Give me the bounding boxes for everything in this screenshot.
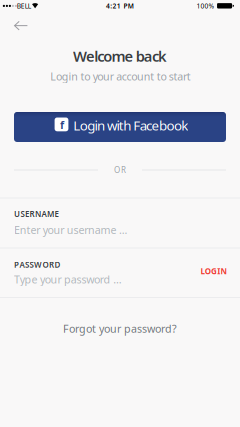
button[interactable]: f: [14, 112, 226, 142]
button[interactable]: LOGIN: [200, 266, 228, 276]
button[interactable]: Username: [0, 199, 240, 248]
staticText: 100%: [196, 1, 214, 10]
staticText: BELL: [17, 1, 31, 10]
button[interactable]: Password: [0, 249, 240, 297]
staticText: f: [60, 118, 64, 132]
button[interactable]: Forgot your password?: [63, 321, 177, 336]
button[interactable]: Back: [14, 21, 28, 31]
staticText: PASSWORD: [14, 259, 60, 270]
staticText: OR: [114, 165, 126, 175]
staticText: Login with Facebook: [73, 116, 188, 134]
staticText: Type your password ...: [14, 272, 122, 286]
staticText: LOGIN: [200, 266, 228, 276]
staticText: Login to your account to start: [50, 69, 191, 83]
staticText: 4:21 PM: [106, 1, 134, 10]
staticText: Welcome back: [73, 46, 167, 66]
staticText: USERNAME: [14, 208, 58, 219]
staticText: Enter your username ...: [14, 223, 128, 237]
staticText: Forgot your password?: [63, 321, 177, 336]
